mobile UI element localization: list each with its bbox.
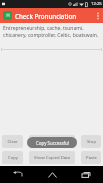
- button[interactable]: Copy Successful: [29, 135, 75, 148]
- button[interactable]: Home: [43, 166, 61, 183]
- button[interactable]: Clear: [2, 135, 23, 148]
- button[interactable]: Back: [8, 166, 26, 183]
- button[interactable]: Recent apps: [77, 166, 95, 183]
- staticText: Stop: [87, 139, 96, 145]
- staticText: Show Copied Data: [34, 155, 70, 161]
- button[interactable]: Show Copied Data: [29, 151, 75, 164]
- button[interactable]: Entrepreneurship, cache, tsunami, chican…: [0, 25, 103, 39]
- staticText: Copy Successful: [36, 140, 69, 146]
- staticText: 12:25: [91, 1, 102, 7]
- button[interactable]: Copy: [2, 151, 23, 164]
- staticText: Check Pronunciation: [15, 12, 77, 20]
- staticText: Clear: [7, 139, 18, 145]
- staticText: Paste: [86, 155, 97, 161]
- button[interactable]: Stop: [81, 135, 101, 148]
- button[interactable]: Paste: [81, 151, 101, 164]
- staticText: Copy Successful: [36, 139, 68, 145]
- button[interactable]: More options: [93, 8, 103, 23]
- staticText: Copy: [8, 155, 18, 161]
